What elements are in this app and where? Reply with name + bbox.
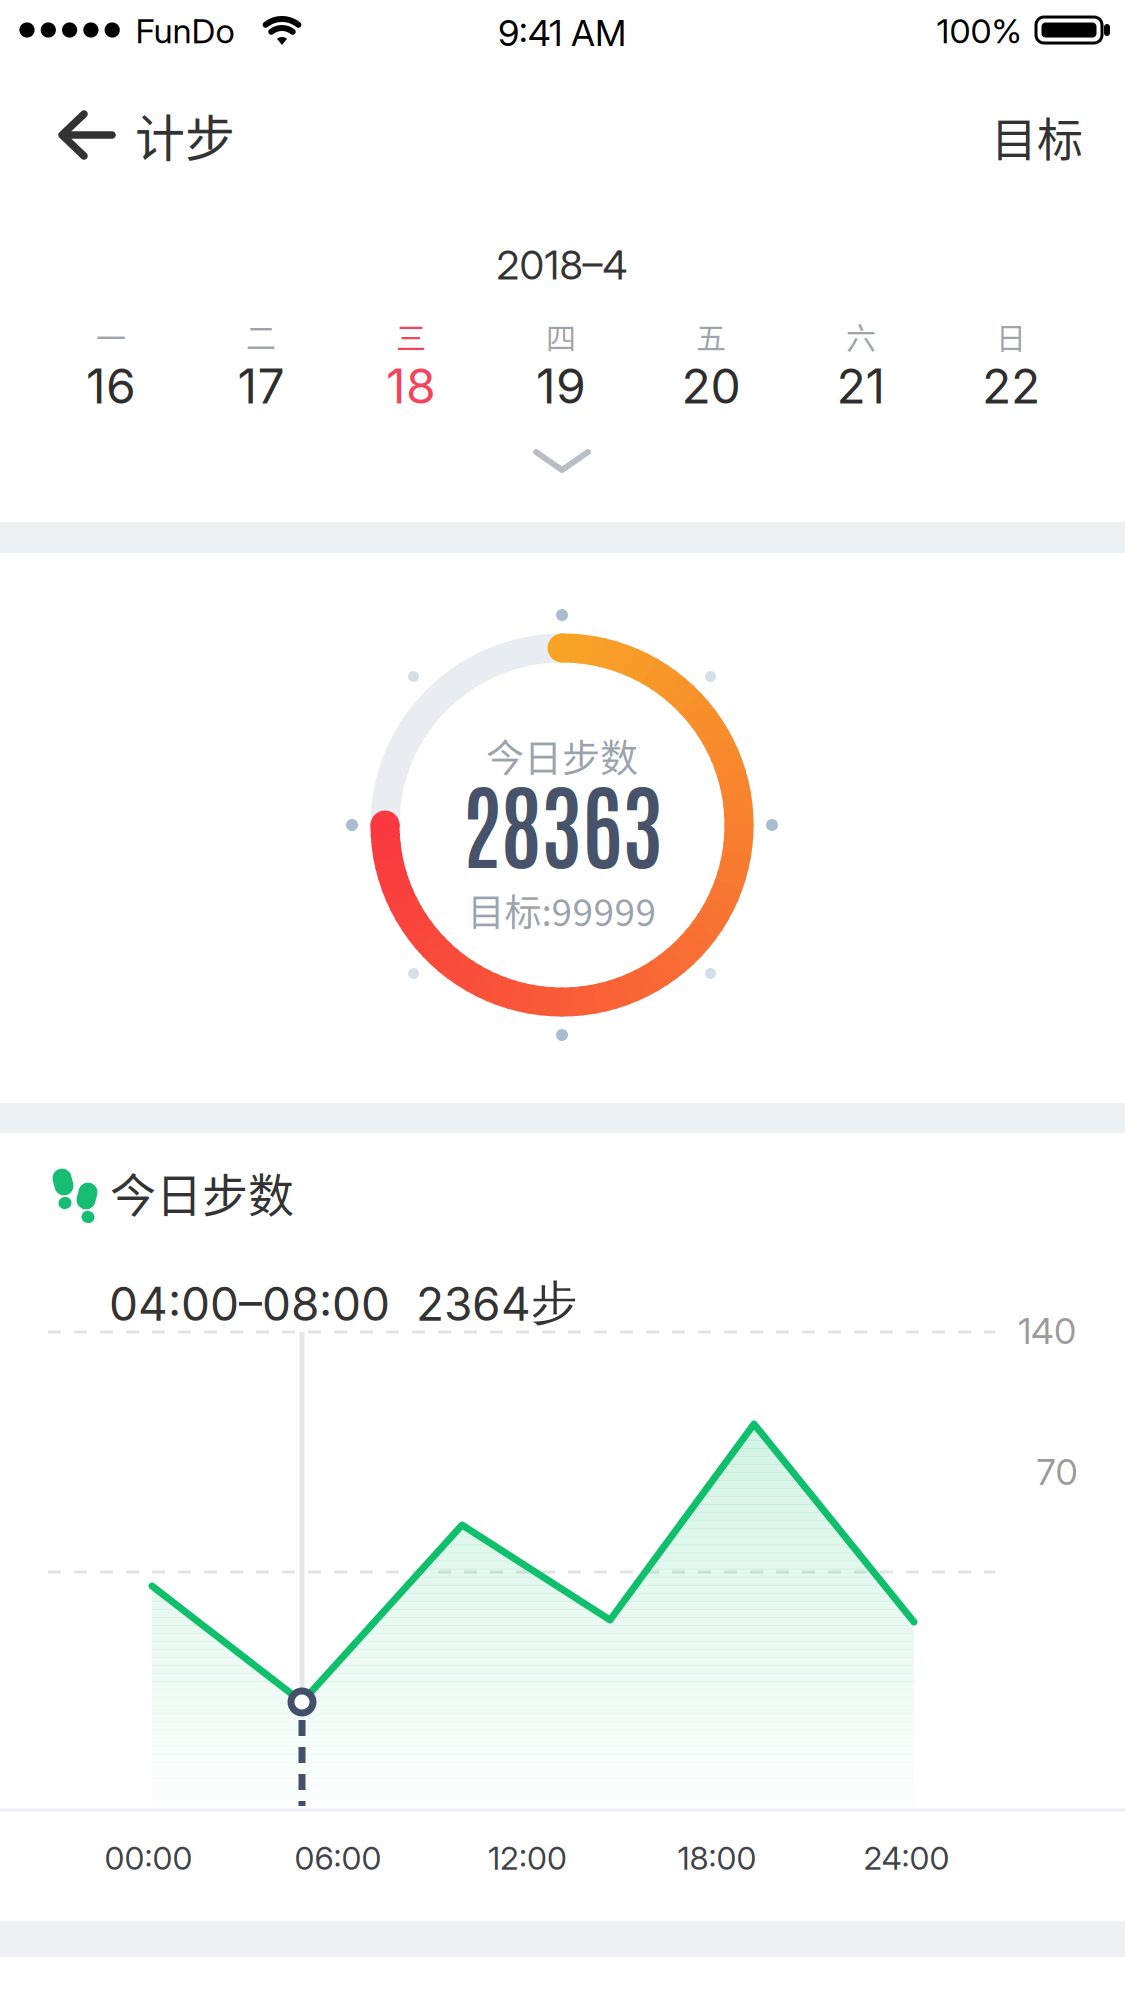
button[interactable]: 四 [491,309,631,419]
button[interactable]: 一 [41,309,181,419]
staticText: 28363 [461,761,663,881]
button[interactable]: 目标 [991,103,1083,169]
staticText: 目标:99999 [467,883,656,937]
staticText: FunDo [135,10,234,51]
button[interactable]: 日 [941,309,1081,419]
staticText: 00:00 [104,1839,192,1877]
staticText: 18:00 [677,1839,756,1877]
staticText: 六 [846,314,876,358]
button[interactable]: 三 [341,309,481,419]
staticText: 今日步数 [486,727,638,782]
button[interactable]: 六 [791,309,931,419]
staticText: 今日步数 [110,1159,294,1225]
staticText: 2018–4 [496,241,627,289]
button[interactable]: Expand calendar [528,448,596,476]
button[interactable]: 二 [191,309,331,419]
staticText: 17 [237,357,284,415]
staticText: 目标 [991,103,1083,169]
staticText: 06:00 [294,1839,381,1877]
button[interactable]: 五 [641,309,781,419]
staticText: 140 [1018,1309,1076,1353]
button[interactable]: Back [59,99,235,171]
staticText: 五 [696,314,726,358]
staticText: 日 [996,314,1026,358]
staticText: 24:00 [863,1839,949,1877]
staticText: 16 [86,357,136,415]
staticText: 12:00 [488,1839,567,1877]
staticText: 18 [386,357,436,415]
staticText: 19 [536,357,586,415]
staticText: 20 [681,357,740,415]
staticText: 一 [96,314,126,358]
staticText: 三 [396,314,426,358]
staticText: 二 [246,314,276,358]
staticText: 70 [1036,1450,1077,1494]
staticText: 四 [546,314,576,358]
staticText: 9:41 AM [498,11,626,55]
staticText: 22 [982,357,1040,415]
staticText: 04:00–08:00 2364步 [109,1274,577,1332]
staticText: 100% [936,10,1021,51]
staticText: 21 [836,357,885,415]
staticText: 计步 [135,99,235,171]
